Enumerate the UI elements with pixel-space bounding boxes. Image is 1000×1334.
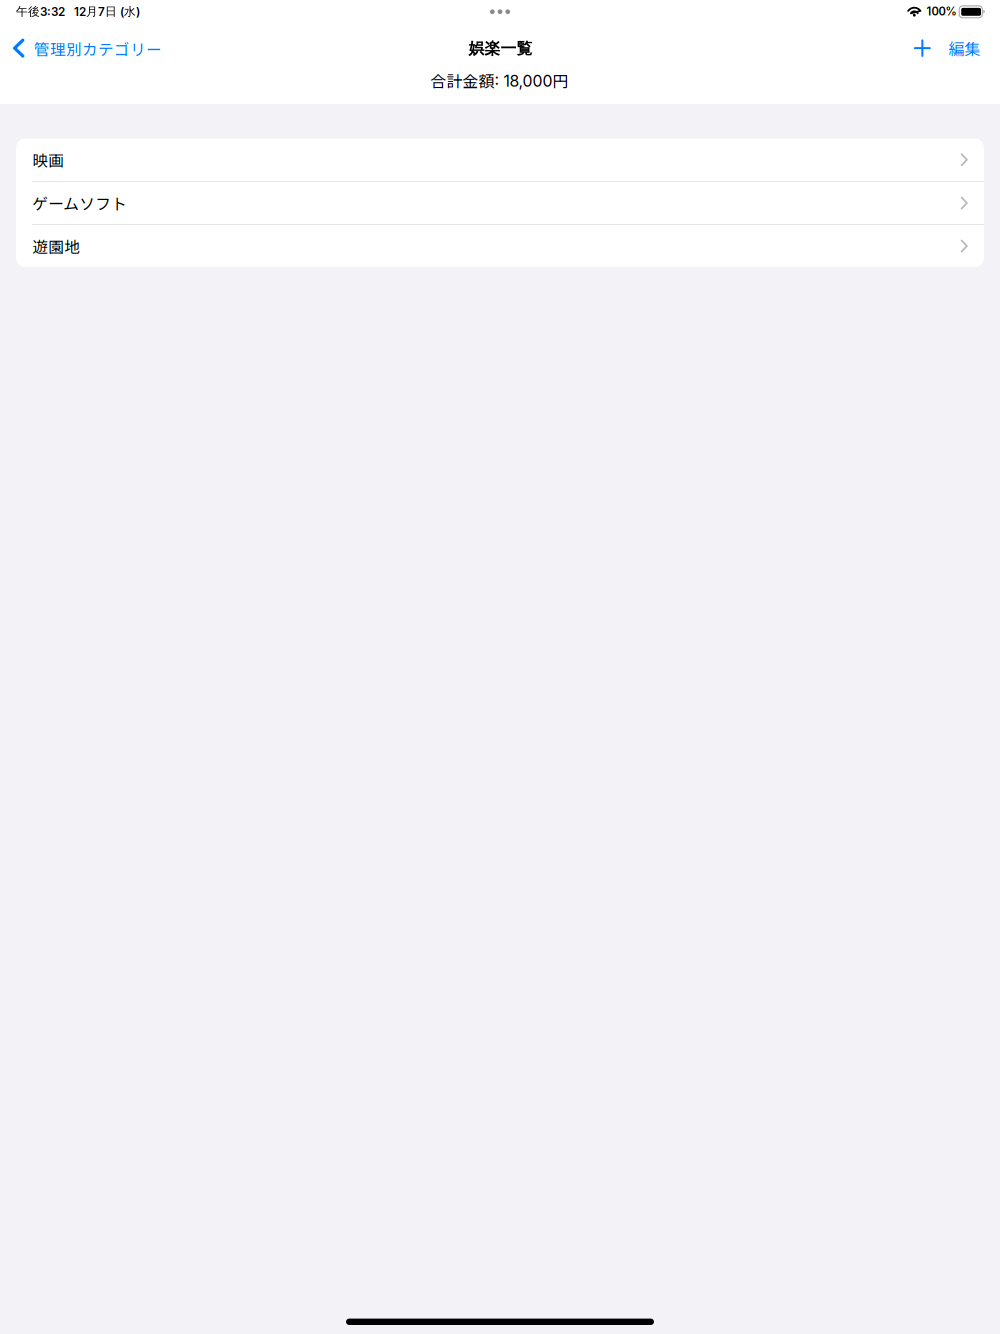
staticText: 映画: [32, 148, 64, 171]
staticText: 遊園地: [32, 235, 80, 257]
button[interactable]: 追加: [901, 26, 944, 70]
button[interactable]: 遊園地: [16, 225, 984, 267]
staticText: 午後3:32 12月7日 (水): [16, 4, 140, 19]
staticText: 編集: [948, 37, 980, 60]
staticText: 管理別カテゴリー: [34, 37, 162, 60]
button[interactable]: 映画: [16, 138, 984, 181]
button[interactable]: 編集: [938, 26, 990, 71]
button[interactable]: ゲームソフト: [16, 182, 984, 224]
staticText: 合計金額: 18,000円: [430, 69, 568, 92]
staticText: 100%: [926, 5, 956, 18]
button[interactable]: 管理別カテゴリー: [13, 27, 159, 71]
staticText: ゲームソフト: [32, 192, 127, 214]
staticText: 娯楽一覧: [468, 39, 532, 58]
